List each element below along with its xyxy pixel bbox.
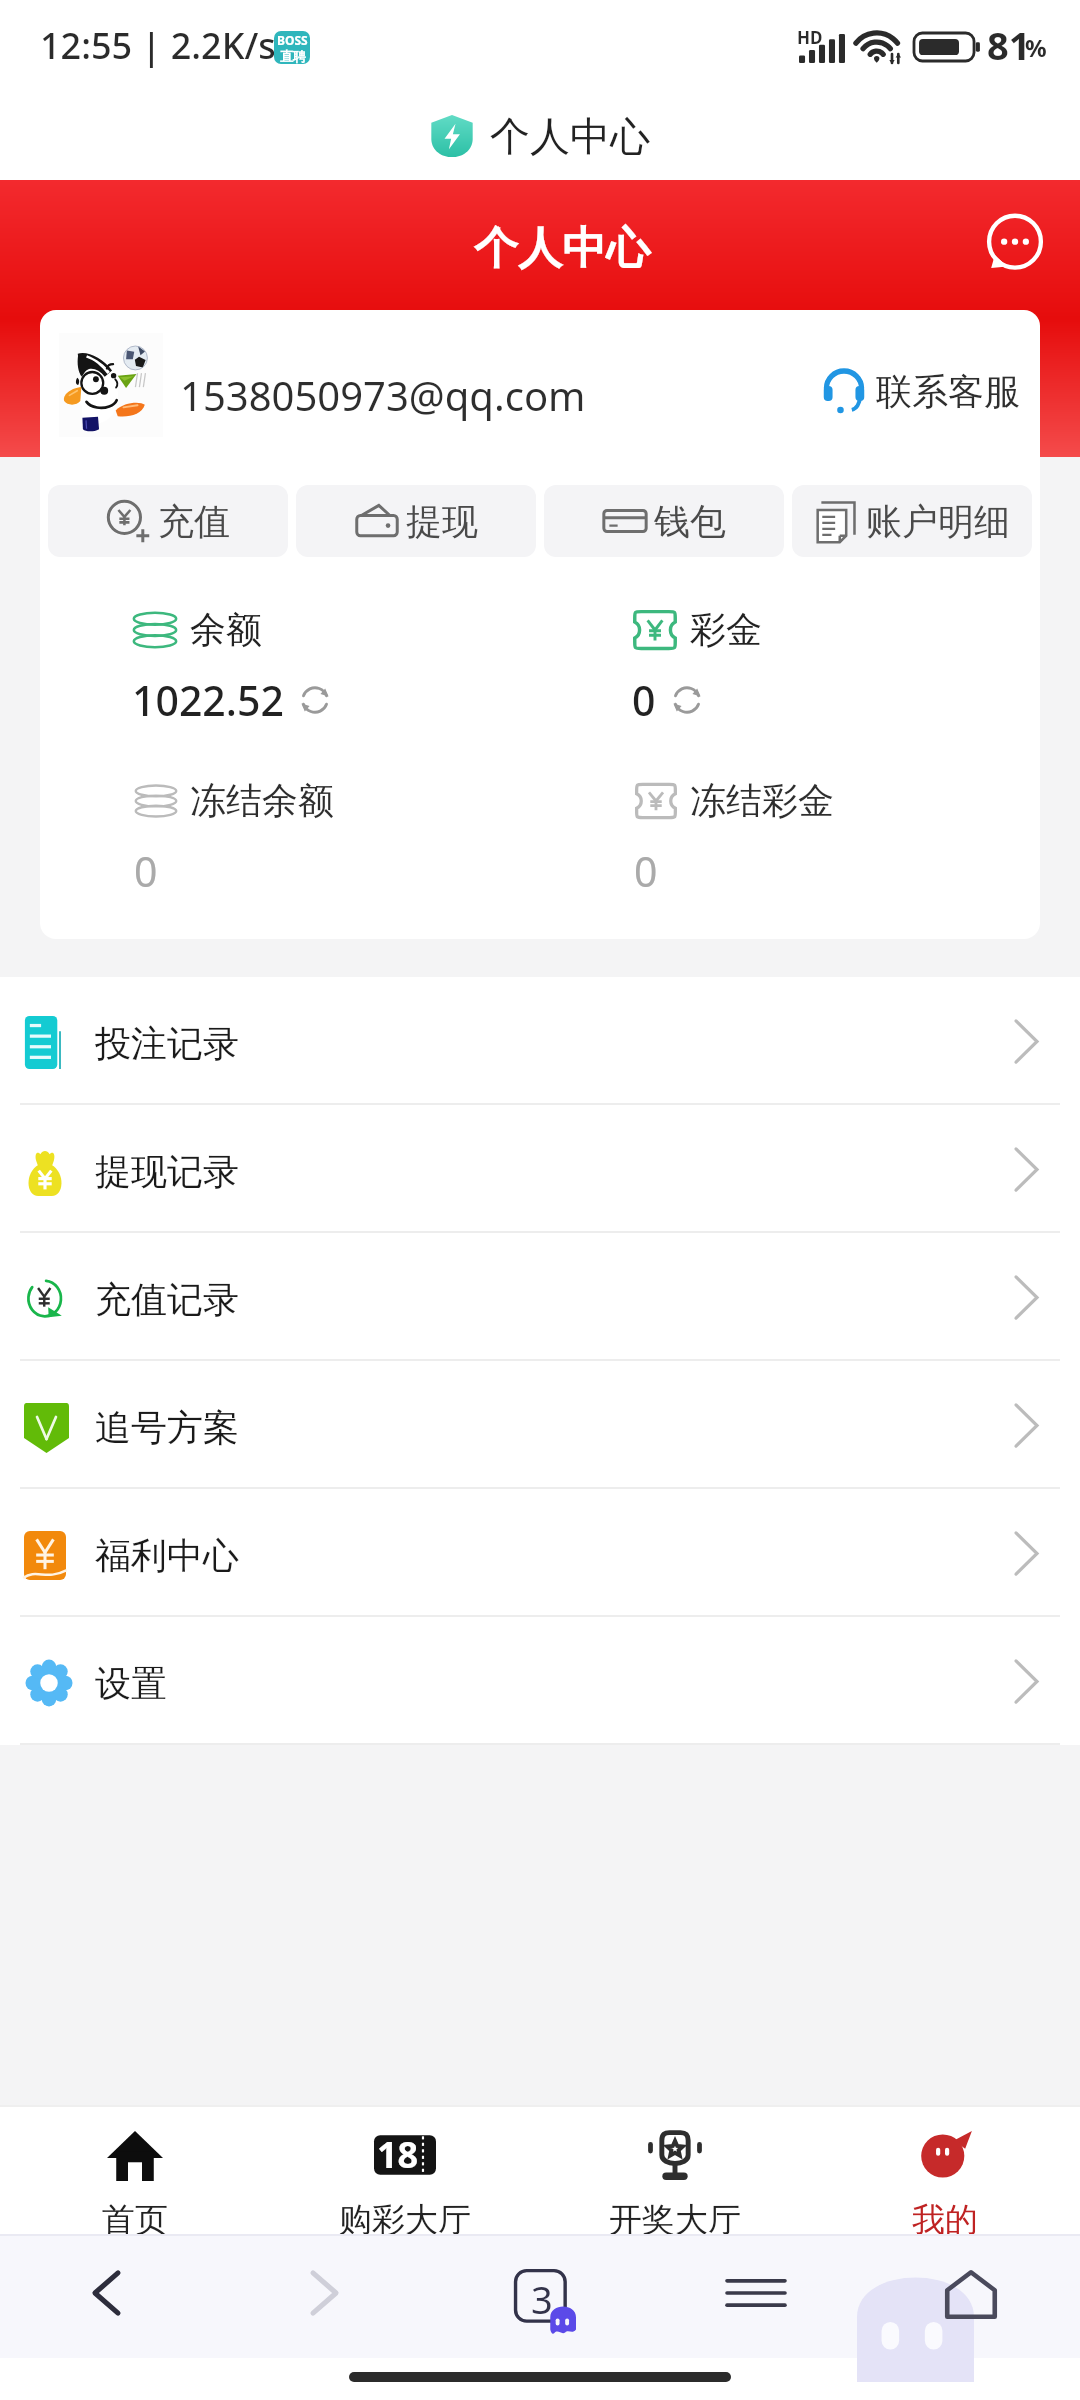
button[interactable]: Back — [82, 2269, 130, 2317]
staticText: 余额 — [190, 607, 262, 652]
staticText: 提现 — [406, 499, 478, 544]
staticText: 冻结彩金 — [690, 778, 834, 823]
button[interactable]: 设置 — [0, 1617, 1080, 1743]
staticText: 冻结余额 — [190, 778, 334, 823]
staticText: 投注记录 — [95, 1021, 239, 1066]
button[interactable]: Customer service chat — [980, 214, 1050, 284]
staticText: 设置 — [95, 1661, 167, 1706]
button[interactable]: 首页 — [0, 2107, 270, 2234]
staticText: % — [1025, 31, 1047, 64]
button[interactable]: 充值记录 — [0, 1233, 1080, 1359]
staticText: 0 — [632, 672, 656, 728]
button[interactable]: 追号方案 — [0, 1361, 1080, 1487]
staticText: 1538050973@qq.com — [180, 368, 586, 422]
staticText: 12:55 | 2.2K/s — [40, 21, 276, 70]
button[interactable]: 充值 — [48, 485, 288, 557]
staticText: 0 — [634, 843, 658, 899]
staticText: HD — [797, 26, 823, 49]
staticText: 福利中心 — [95, 1533, 239, 1578]
button[interactable]: 福利中心 — [0, 1489, 1080, 1615]
staticText: 追号方案 — [95, 1405, 239, 1450]
staticText: 彩金 — [690, 607, 762, 652]
button[interactable]: 提现 — [296, 485, 536, 557]
staticText: 购彩大厅 — [339, 2199, 471, 2241]
staticText: 直聘 — [280, 48, 306, 64]
staticText: BOSS — [277, 32, 308, 48]
button[interactable]: Menu — [727, 2274, 785, 2312]
staticText: 1022.52 — [132, 672, 284, 728]
button[interactable]: Tabs — [514, 2269, 576, 2333]
button[interactable]: Refresh — [670, 683, 704, 717]
staticText: 0 — [134, 843, 158, 899]
staticText: 联系客服 — [876, 369, 1020, 414]
button[interactable]: 18 — [270, 2107, 540, 2234]
staticText: 81 — [987, 19, 1031, 71]
staticText: 18 — [377, 2130, 419, 2179]
button[interactable]: 投注记录 — [0, 977, 1080, 1103]
button[interactable]: 账户明细 — [792, 485, 1032, 557]
staticText: 开奖大厅 — [609, 2199, 741, 2241]
button[interactable]: 提现记录 — [0, 1105, 1080, 1231]
button[interactable]: 联系客服 — [816, 360, 1026, 422]
staticText: 提现记录 — [95, 1149, 239, 1194]
button[interactable]: Home — [944, 2268, 998, 2321]
button[interactable]: Forward — [301, 2269, 349, 2317]
button[interactable]: 开奖大厅 — [540, 2107, 810, 2234]
staticText: 个人中心 — [474, 221, 650, 276]
staticText: 充值 — [158, 499, 230, 544]
button[interactable]: 钱包 — [544, 485, 784, 557]
staticText: 我的 — [912, 2199, 978, 2241]
staticText: 账户明细 — [866, 499, 1010, 544]
staticText: 钱包 — [654, 499, 726, 544]
staticText: 个人中心 — [490, 111, 650, 161]
button[interactable]: Refresh — [298, 683, 332, 717]
staticText: 充值记录 — [95, 1277, 239, 1322]
staticText: 3 — [531, 2273, 553, 2325]
staticText: 首页 — [102, 2199, 168, 2241]
button[interactable]: 我的 — [810, 2107, 1080, 2234]
